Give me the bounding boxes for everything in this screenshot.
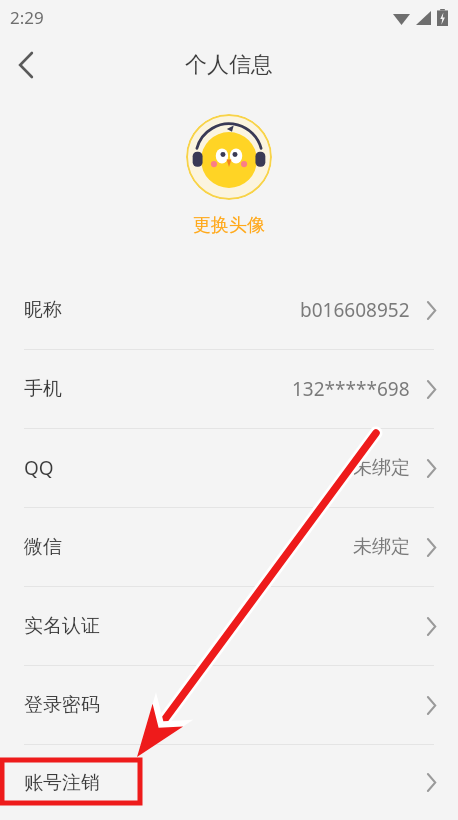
staticText: 未绑定 <box>353 535 410 559</box>
button[interactable]: 昵称 <box>0 271 458 349</box>
staticText: 个人信息 <box>185 51 273 79</box>
staticText: 登录密码 <box>24 693 100 717</box>
button[interactable]: Back <box>0 39 52 91</box>
button[interactable]: 实名认证 <box>0 587 458 665</box>
staticText: 2:29 <box>10 6 44 29</box>
staticText: 昵称 <box>24 298 62 322</box>
staticText: b016608952 <box>300 297 410 323</box>
staticText: 实名认证 <box>24 614 100 638</box>
staticText: 微信 <box>24 535 62 559</box>
button[interactable]: 手机 <box>0 350 458 428</box>
staticText: 132*****698 <box>292 376 410 402</box>
button[interactable]: Change avatar <box>186 114 272 200</box>
staticText: 账号注销 <box>24 771 100 795</box>
button[interactable]: 更换头像 <box>187 212 271 239</box>
staticText: 更换头像 <box>193 214 265 237</box>
staticText: 手机 <box>24 377 62 401</box>
staticText: 未绑定 <box>353 456 410 480</box>
staticText: QQ <box>24 455 54 481</box>
button[interactable]: 登录密码 <box>0 666 458 744</box>
button[interactable]: 账号注销 <box>0 745 458 820</box>
button[interactable]: 微信 <box>0 508 458 586</box>
button[interactable]: QQ <box>0 429 458 507</box>
